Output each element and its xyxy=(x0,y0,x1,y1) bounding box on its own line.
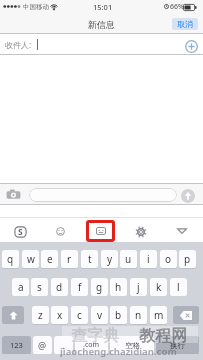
button[interactable]: Send xyxy=(181,189,195,203)
staticText: 66% xyxy=(170,2,184,12)
staticText: f xyxy=(78,280,82,294)
staticText: jiaocheng.chazidian.com xyxy=(60,345,177,357)
button[interactable]: . xyxy=(54,336,73,354)
button[interactable]: b xyxy=(110,306,127,324)
button[interactable]: g xyxy=(91,278,108,296)
button[interactable]: Backspace xyxy=(173,306,199,324)
button[interactable]: d xyxy=(51,278,68,296)
button[interactable]: Keyboard xyxy=(86,220,115,242)
button[interactable]: u xyxy=(120,250,137,268)
staticText: 取消 xyxy=(177,19,193,29)
staticText: z xyxy=(38,308,43,322)
staticText: .com xyxy=(83,340,100,350)
staticText: b xyxy=(115,308,122,322)
staticText: d xyxy=(56,280,63,294)
staticText: 教程网 xyxy=(139,326,187,343)
button[interactable]: i xyxy=(140,250,157,268)
staticText: 中国移动 xyxy=(23,3,49,11)
button[interactable]: 空格 xyxy=(110,336,154,354)
staticText: q xyxy=(7,252,14,266)
staticText: x xyxy=(57,308,63,322)
staticText: m xyxy=(154,308,164,322)
button[interactable]: Hide keyboard xyxy=(177,228,187,234)
staticText: y xyxy=(107,252,113,266)
button[interactable]: 123 xyxy=(2,336,31,354)
staticText: 15:01 xyxy=(93,2,113,12)
staticText: s xyxy=(37,280,42,294)
staticText: o xyxy=(165,252,172,266)
button[interactable]: o xyxy=(160,250,177,268)
button[interactable]: Shift xyxy=(2,306,24,324)
staticText: 收件人: xyxy=(5,39,32,50)
button[interactable]: Emoji xyxy=(56,227,65,236)
button[interactable]: m xyxy=(150,306,167,324)
staticText: g xyxy=(96,280,103,294)
staticText: 查字典 xyxy=(71,326,119,343)
staticText: v xyxy=(97,308,103,322)
button[interactable]: j xyxy=(130,278,147,296)
staticText: c xyxy=(77,308,82,322)
staticText: l xyxy=(177,280,180,294)
button[interactable]: Camera xyxy=(6,189,21,200)
button[interactable]: h xyxy=(110,278,127,296)
staticText: . xyxy=(62,339,65,351)
staticText: n xyxy=(135,308,142,322)
button[interactable]: a xyxy=(12,278,29,296)
button[interactable]: l xyxy=(170,278,187,296)
staticText: 123 xyxy=(10,340,23,350)
staticText: r xyxy=(67,252,72,266)
button[interactable]: z xyxy=(32,306,49,324)
button[interactable]: t xyxy=(81,250,98,268)
staticText: u xyxy=(125,252,132,266)
button[interactable]: f xyxy=(71,278,88,296)
button[interactable]: n xyxy=(130,306,147,324)
staticText: e xyxy=(47,252,53,266)
button[interactable]: 取消 xyxy=(172,18,198,30)
staticText: w xyxy=(27,252,35,266)
staticText: 新信息 xyxy=(88,19,115,30)
button[interactable]: v xyxy=(91,306,108,324)
button[interactable]: e xyxy=(41,250,58,268)
button[interactable]: k xyxy=(150,278,167,296)
staticText: t xyxy=(88,252,92,266)
button[interactable]: r xyxy=(61,250,78,268)
staticText: S xyxy=(18,226,23,238)
button[interactable]: 换行 xyxy=(156,336,199,354)
staticText: p xyxy=(184,252,191,266)
button[interactable]: c xyxy=(71,306,88,324)
staticText: 空格 xyxy=(125,341,140,350)
staticText: @ xyxy=(38,339,47,351)
button[interactable]: p xyxy=(179,250,196,268)
button[interactable]: y xyxy=(101,250,118,268)
button[interactable]: w xyxy=(22,250,39,268)
staticText: a xyxy=(18,280,24,294)
staticText: j xyxy=(137,280,140,294)
button[interactable]: .com xyxy=(75,336,108,354)
staticText: k xyxy=(156,280,162,294)
staticText: i xyxy=(147,252,150,266)
button[interactable]: @ xyxy=(33,336,52,354)
button[interactable]: Add recipient xyxy=(185,40,198,53)
button[interactable]: s xyxy=(31,278,48,296)
button[interactable]: x xyxy=(51,306,68,324)
staticText: 换行 xyxy=(170,341,185,350)
button[interactable]: Input method xyxy=(14,226,27,238)
staticText: h xyxy=(115,280,122,294)
button[interactable] xyxy=(29,188,177,202)
button[interactable]: Settings xyxy=(136,227,146,237)
button[interactable]: q xyxy=(2,250,19,268)
